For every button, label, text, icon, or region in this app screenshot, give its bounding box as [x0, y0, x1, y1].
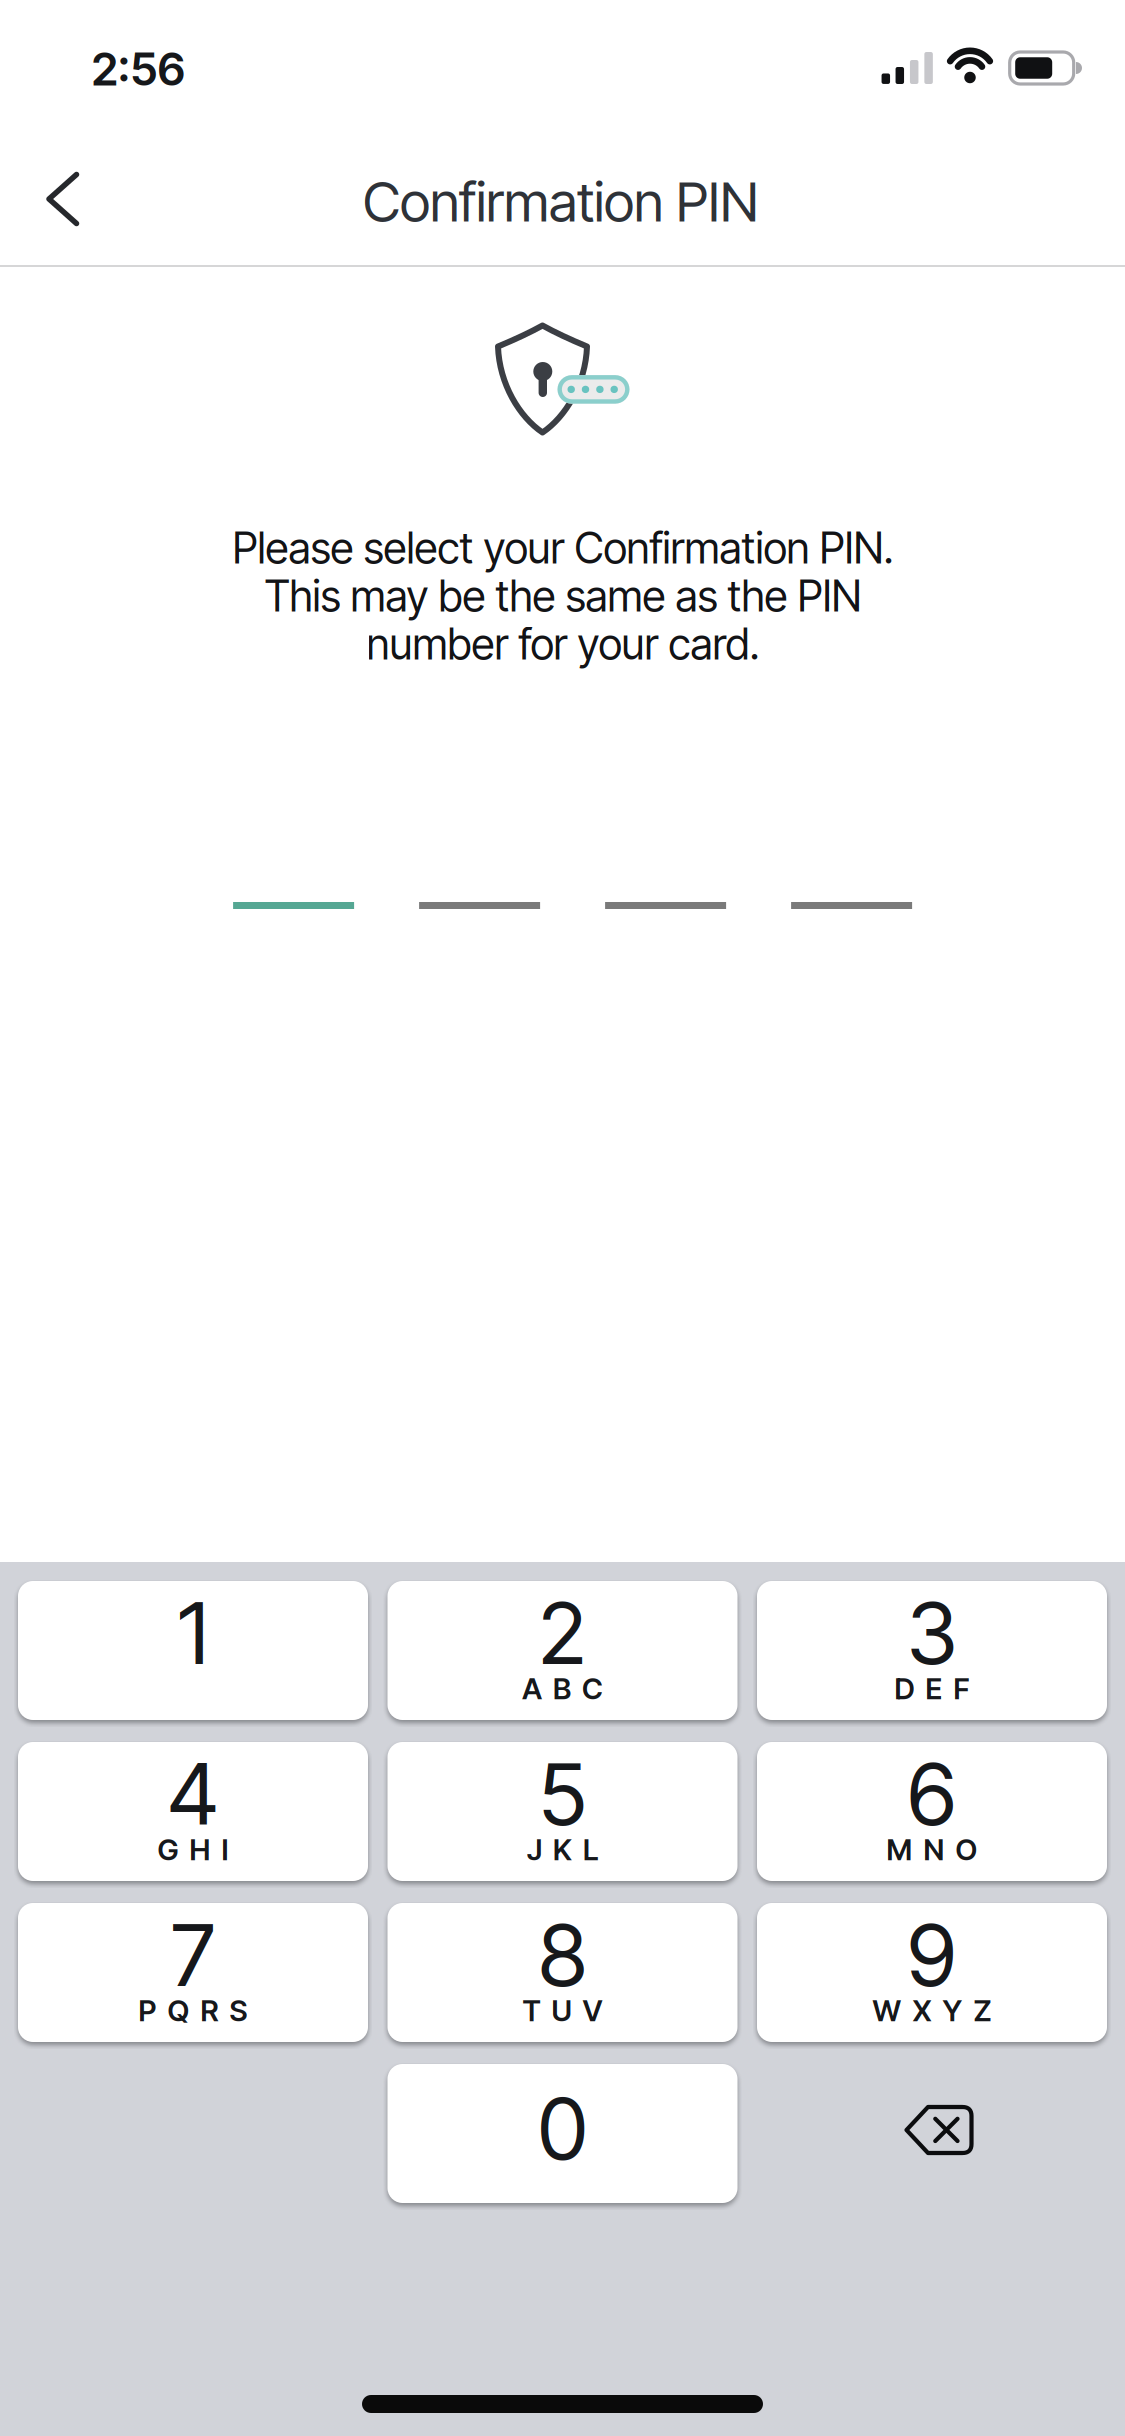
staticText: MNO [886, 1832, 977, 1867]
button[interactable]: 8 [387, 1903, 737, 2042]
staticText: PQRS [138, 1993, 247, 2028]
staticText: 7 [171, 1903, 215, 2007]
staticText: 3 [907, 1581, 957, 1685]
staticText: TUV [522, 1993, 602, 2028]
staticText: GHI [157, 1832, 228, 1867]
button[interactable]: 6 [757, 1742, 1107, 1881]
staticText: DEF [894, 1671, 969, 1706]
button[interactable]: 9 [757, 1903, 1107, 2042]
button[interactable]: 4 [18, 1742, 368, 1881]
button[interactable]: Delete [757, 2064, 1107, 2203]
button[interactable]: Back [23, 154, 103, 244]
staticText: 5 [539, 1742, 586, 1846]
staticText: This may be the same as the PIN [264, 570, 861, 622]
button[interactable]: 7 [18, 1903, 368, 2042]
staticText: 2 [538, 1581, 586, 1685]
button[interactable]: 2 [387, 1581, 737, 1720]
staticText: 6 [907, 1742, 956, 1846]
staticText: JKL [527, 1832, 598, 1867]
button[interactable]: 3 [757, 1581, 1107, 1720]
staticText: Please select your Confirmation PIN. [232, 522, 893, 574]
staticText: Confirmation PIN [363, 168, 759, 234]
button[interactable]: 1 [18, 1581, 368, 1720]
staticText: 1 [178, 1581, 208, 1685]
staticText: WXYZ [872, 1993, 991, 2028]
staticText: ABC [522, 1671, 603, 1706]
staticText: 4 [167, 1742, 218, 1846]
staticText: number for your card. [366, 618, 759, 670]
staticText: 2:56 [91, 42, 185, 96]
button[interactable]: 5 [387, 1742, 737, 1881]
staticText: 0 [538, 2077, 587, 2180]
staticText: 9 [907, 1903, 956, 2007]
button[interactable]: 0 [387, 2064, 737, 2203]
staticText: 8 [538, 1903, 586, 2007]
